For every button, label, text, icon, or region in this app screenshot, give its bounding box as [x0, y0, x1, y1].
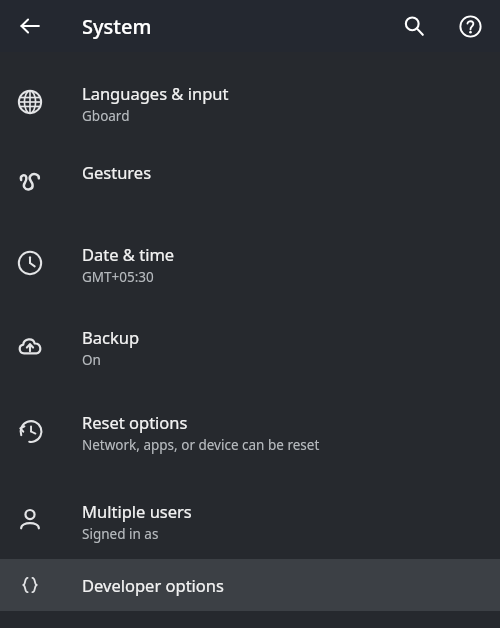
button[interactable]: Gestures [0, 141, 500, 221]
staticText: Gestures [82, 161, 152, 183]
button[interactable]: Multiple users [0, 476, 500, 559]
staticText: Network, apps, or device can be reset [82, 436, 320, 454]
staticText: Backup [82, 326, 140, 348]
staticText: On [82, 351, 101, 369]
button[interactable]: Reset options [0, 388, 500, 476]
staticText: GMT+05:30 [82, 268, 154, 286]
staticText: Signed in as [82, 525, 159, 543]
button[interactable]: Back [11, 7, 49, 45]
button[interactable]: Search [394, 6, 434, 46]
button[interactable]: Help [450, 6, 490, 46]
button[interactable]: Developer options [0, 559, 500, 611]
staticText: System [82, 13, 152, 40]
staticText: Gboard [82, 107, 130, 125]
staticText: Developer options [82, 574, 224, 596]
button[interactable]: Languages & input [0, 61, 500, 141]
staticText: Date & time [82, 243, 175, 265]
staticText: Languages & input [82, 82, 229, 104]
button[interactable]: Backup [0, 303, 500, 388]
staticText: Multiple users [82, 500, 192, 522]
staticText: Reset options [82, 411, 188, 433]
button[interactable]: Date & time [0, 221, 500, 303]
